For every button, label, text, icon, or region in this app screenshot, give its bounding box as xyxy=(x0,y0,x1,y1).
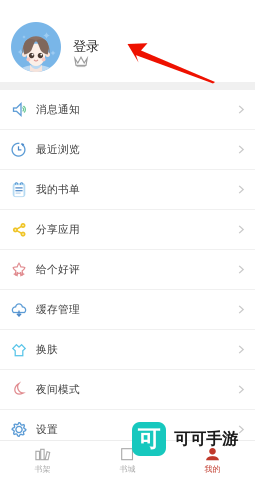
button[interactable]: 换肤 xyxy=(0,330,255,369)
button[interactable]: 我的 xyxy=(170,441,255,480)
staticText: 缓存管理 xyxy=(36,303,80,316)
button[interactable]: 消息通知 xyxy=(0,90,255,129)
button[interactable]: 我的书单 xyxy=(0,170,255,209)
button[interactable]: 书架 xyxy=(0,441,85,480)
staticText: 消息通知 xyxy=(36,103,80,116)
button[interactable]: 最近浏览 xyxy=(0,130,255,169)
staticText: 书架 xyxy=(34,464,50,474)
button[interactable]: 设置 xyxy=(0,410,255,449)
staticText: 我的书单 xyxy=(36,183,80,196)
staticText: 分享应用 xyxy=(36,223,80,236)
staticText: 给个好评 xyxy=(36,263,80,276)
staticText: 我的 xyxy=(204,464,220,474)
button[interactable]: 分享应用 xyxy=(0,210,255,249)
button[interactable]: 书城 xyxy=(85,441,170,480)
staticText: 登录 xyxy=(73,38,99,54)
button[interactable]: 给个好评 xyxy=(0,250,255,289)
staticText: 书城 xyxy=(119,464,135,474)
staticText: 设置 xyxy=(36,423,58,436)
staticText: 可可手游 xyxy=(174,429,238,449)
staticText: 夜间模式 xyxy=(36,383,80,396)
button[interactable]: 夜间模式 xyxy=(0,370,255,409)
button[interactable]: 缓存管理 xyxy=(0,290,255,329)
staticText: 最近浏览 xyxy=(36,143,80,156)
button[interactable]: 登录 xyxy=(0,0,255,82)
staticText: 可 xyxy=(137,425,160,453)
staticText: 换肤 xyxy=(36,343,58,356)
